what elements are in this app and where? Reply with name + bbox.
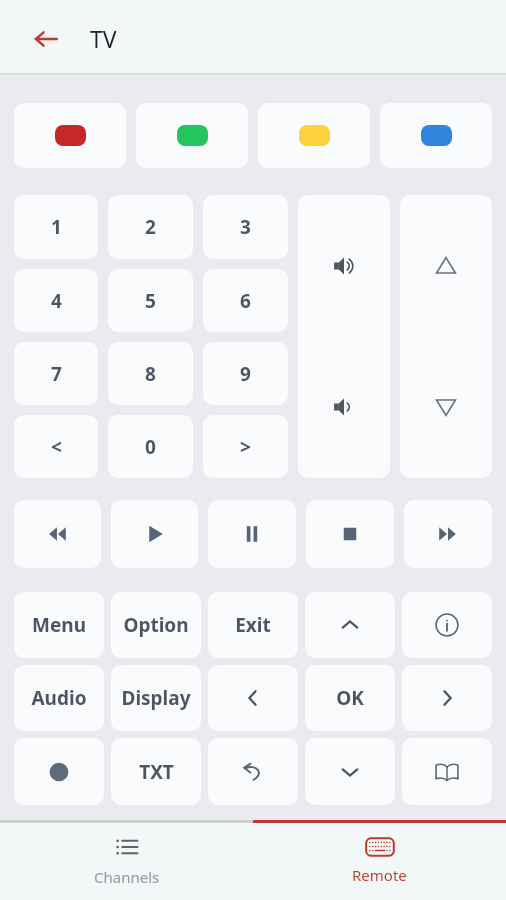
button[interactable]: 2 [108,195,193,259]
staticText: OK [336,685,364,711]
button[interactable]: Rewind [14,500,101,568]
button[interactable]: Display [111,665,201,731]
button[interactable]: Red [14,103,126,168]
button[interactable]: Green [136,103,248,168]
button[interactable]: 1 [14,195,98,259]
button[interactable]: TXT [111,738,201,805]
button[interactable]: 8 [108,342,193,405]
staticText: 1 [51,214,62,240]
button[interactable]: Channel down [400,336,492,478]
staticText: Menu [32,612,86,638]
button[interactable]: > [203,415,288,478]
staticText: 6 [240,288,251,314]
button[interactable]: Right [402,665,492,731]
button[interactable]: Channel up [400,195,492,337]
button[interactable]: 5 [108,269,193,332]
button[interactable]: Up [305,592,395,658]
button[interactable]: Remote [253,820,506,900]
button[interactable]: Volume down [298,336,390,478]
button[interactable]: Volume up [298,195,390,337]
button[interactable]: Back [208,738,298,805]
staticText: > [240,434,251,460]
button[interactable]: Option [111,592,201,658]
button[interactable]: Record [14,738,104,805]
staticText: Remote [352,865,407,885]
button[interactable]: Down [305,738,395,805]
button[interactable]: Channels [0,820,253,900]
staticText: Audio [31,685,87,711]
staticText: Display [121,685,191,711]
staticText: 4 [51,288,62,314]
staticText: 3 [240,214,251,240]
staticText: Channels [94,867,160,887]
button[interactable]: 3 [203,195,288,259]
staticText: 8 [145,361,156,387]
staticText: 2 [145,214,156,240]
staticText: TV [90,23,117,54]
button[interactable]: < [14,415,98,478]
button[interactable]: Guide [402,738,492,805]
button[interactable]: Yellow [258,103,370,168]
staticText: Exit [235,612,271,638]
button[interactable]: Pause [208,500,296,568]
button[interactable]: Fast forward [404,500,492,568]
button[interactable]: Menu [14,592,104,658]
staticText: 5 [145,288,156,314]
staticText: 7 [51,361,62,387]
staticText: TXT [139,759,174,785]
button[interactable]: Info [402,592,492,658]
staticText: 9 [240,361,251,387]
button[interactable]: Blue [380,103,492,168]
button[interactable]: 9 [203,342,288,405]
button[interactable]: 0 [108,415,193,478]
button[interactable]: Exit [208,592,298,658]
button[interactable]: Play [111,500,198,568]
button[interactable]: 7 [14,342,98,405]
staticText: 0 [145,434,156,460]
staticText: < [51,434,62,460]
button[interactable]: Audio [14,665,104,731]
staticText: Option [123,612,189,638]
button[interactable]: Back [24,17,68,61]
button[interactable]: 4 [14,269,98,332]
button[interactable]: 6 [203,269,288,332]
button[interactable]: Left [208,665,298,731]
button[interactable]: Stop [306,500,394,568]
button[interactable]: OK [305,665,395,731]
